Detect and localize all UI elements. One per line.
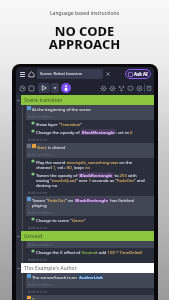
button[interactable]: Menu — [18, 70, 27, 79]
button[interactable]: Layers — [99, 84, 108, 93]
button[interactable]: Add condition — [26, 241, 154, 248]
staticText: Change the opacity of BlackRectangle : s… — [36, 129, 133, 135]
button[interactable]: Play the sound assetsjsfx_swooshing.wav … — [26, 158, 154, 171]
button[interactable]: Add action — [26, 136, 154, 143]
staticText: Add condition — [28, 114, 53, 119]
button[interactable]: Settings — [135, 84, 144, 93]
staticText: Scene transition — [24, 97, 63, 104]
button[interactable]: Close tab — [104, 70, 112, 78]
button[interactable]: Show layer "Transition" — [26, 120, 154, 128]
staticText: Show layer "Transition" — [36, 121, 83, 127]
button[interactable]: History — [18, 84, 27, 93]
staticText: NO CODE — [0, 22, 169, 40]
staticText: Add action — [28, 225, 48, 230]
staticText: Add action — [28, 257, 48, 262]
button[interactable]: Add condition — [26, 281, 154, 288]
staticText: APPROACH — [0, 35, 169, 53]
button[interactable]: Comments — [126, 84, 135, 93]
staticText: Add action — [28, 289, 48, 294]
staticText: The cursor/touch is on AuthorLink — [32, 274, 105, 280]
button[interactable]: Tween the opacity of BlackRectangle to 2… — [26, 171, 154, 189]
staticText: Tween "FadeOut" on BlackRectangle has fi… — [32, 197, 145, 208]
button[interactable]: At the beginning of the scene — [26, 105, 154, 113]
button[interactable]: Add condition — [26, 209, 154, 216]
staticText: Add condition — [28, 242, 53, 247]
staticText: Add condition — [28, 210, 53, 215]
button[interactable]: Effects — [108, 84, 117, 93]
button[interactable]: Delete — [145, 84, 153, 92]
staticText: Tween the opacity of BlackRectangle to 2… — [36, 172, 145, 188]
staticText: Scene: Robot Invasion — [40, 71, 83, 77]
staticText: Add condition — [28, 282, 53, 287]
button[interactable]: Change the X offset of Ground: add 100 *… — [26, 248, 154, 256]
button[interactable]: Start is clicked — [26, 143, 154, 151]
staticText: Start is clicked — [37, 144, 66, 150]
button[interactable]: Preview options — [51, 83, 59, 93]
staticText: Add action — [28, 137, 48, 142]
button[interactable]: Home — [27, 70, 36, 79]
button[interactable]: Add action — [26, 256, 154, 263]
button[interactable]: Debug — [61, 83, 71, 93]
staticText: Add action — [28, 190, 48, 195]
button[interactable]: Add condition — [26, 113, 154, 120]
staticText: Trigger once — [32, 296, 58, 299]
staticText: This Example's Author — [24, 265, 77, 272]
staticText: Add condition — [28, 152, 53, 157]
button[interactable]: Scene: Robot Invasion — [37, 69, 103, 79]
button[interactable]: Change the opacity of BlackRectangle : s… — [26, 128, 154, 136]
button[interactable]: Scene transition — [16, 95, 154, 105]
button[interactable]: Network — [117, 84, 126, 93]
button[interactable]: The cursor/touch is on AuthorLink — [26, 273, 154, 281]
button[interactable]: This Example's Author — [16, 263, 154, 273]
button[interactable]: Ground — [16, 231, 154, 241]
button[interactable]: Save — [27, 84, 36, 93]
button[interactable]: Add action — [26, 288, 154, 295]
button[interactable]: Tween "FadeOut" on BlackRectangle has fi… — [26, 196, 154, 209]
staticText: Ground — [24, 233, 43, 240]
staticText: Language based instructions — [0, 10, 169, 17]
button[interactable]: Preview — [38, 83, 50, 93]
button[interactable]: Trigger once — [26, 295, 154, 300]
button[interactable]: Change to scene "Game" — [26, 216, 154, 224]
button[interactable]: Add action — [26, 189, 154, 196]
staticText: Ask AI — [134, 71, 148, 77]
staticText: Change to scene "Game" — [36, 217, 86, 223]
staticText: At the beginning of the scene — [32, 106, 91, 112]
button[interactable]: Ask AI — [125, 69, 151, 79]
button[interactable]: Add action — [26, 224, 154, 231]
staticText: Change the X offset of Ground: add 100 *… — [36, 249, 143, 255]
button[interactable]: Add condition — [26, 151, 154, 158]
staticText: Play the sound assetsjsfx_swooshing.wav … — [36, 159, 145, 170]
